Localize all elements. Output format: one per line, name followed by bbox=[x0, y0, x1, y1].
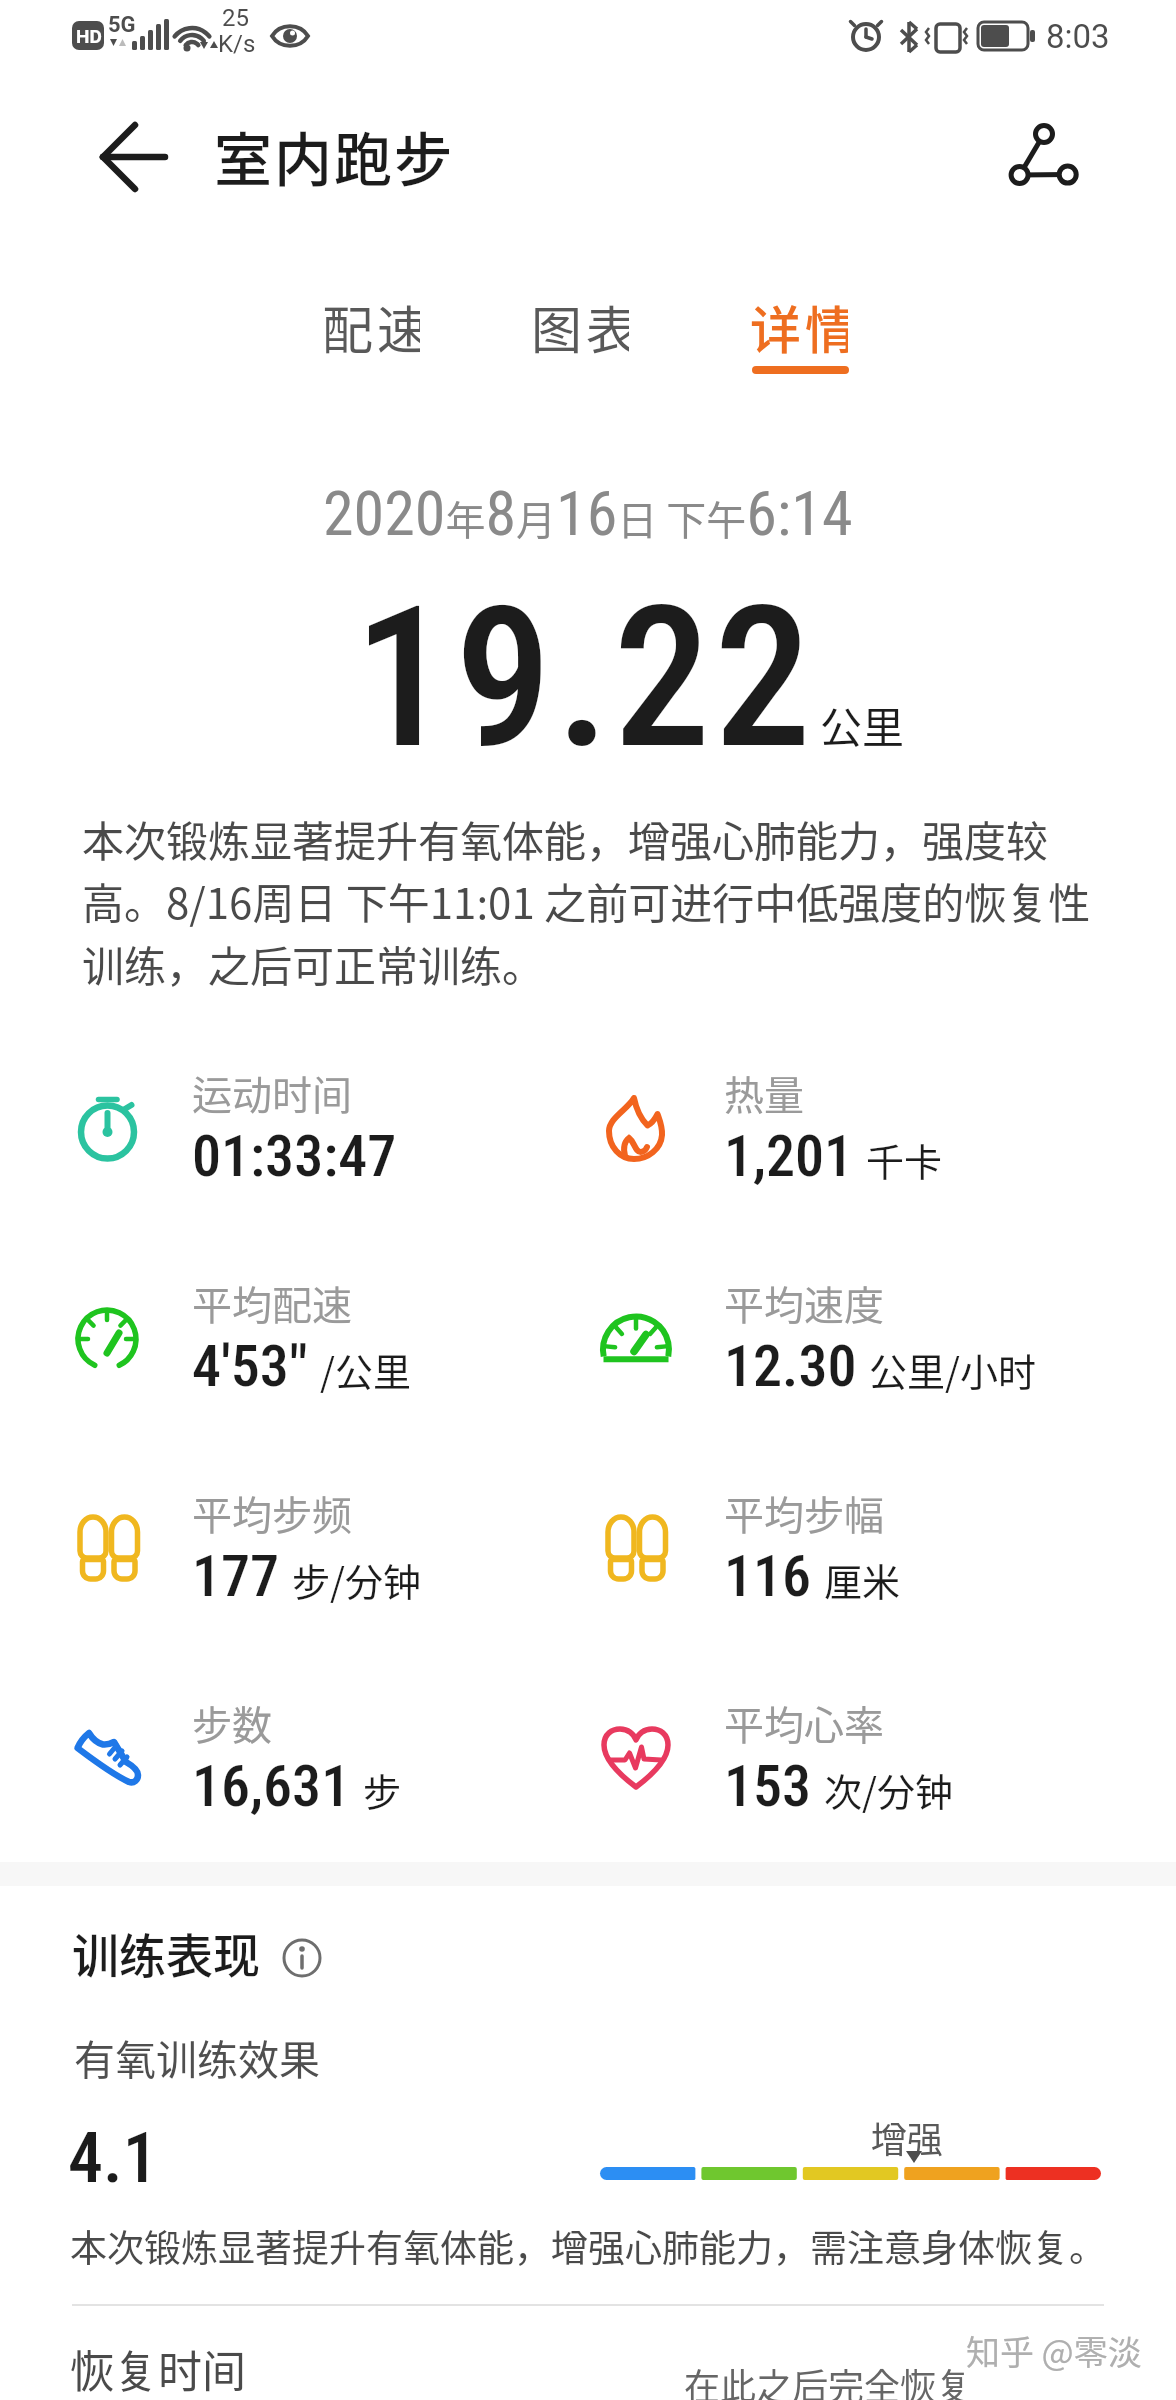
staticText: 平均心率 bbox=[724, 1694, 884, 1752]
staticText: 01:33:47 bbox=[192, 1122, 397, 1190]
staticText: 详情 bbox=[750, 290, 848, 364]
staticText: 图表 bbox=[531, 290, 629, 364]
staticText: 本次锻炼显著提升有氧体能，增强心肺能力，强度较 bbox=[82, 808, 1049, 869]
staticText: 177 bbox=[192, 1542, 280, 1610]
staticText: 25 bbox=[222, 4, 249, 32]
button[interactable]: 平均配速 bbox=[60, 1273, 570, 1443]
staticText: 4'53" bbox=[192, 1332, 308, 1400]
staticText: 平均步频 bbox=[192, 1484, 352, 1542]
staticText: 116 bbox=[724, 1542, 812, 1610]
staticText: 高。8/16周日 下午11:01 之前可进行中低强度的恢复性 bbox=[82, 870, 1091, 931]
staticText: /公里 bbox=[320, 1342, 411, 1397]
staticText: 本次锻炼显著提升有氧体能，增强心肺能力，需注意身体恢复。 bbox=[70, 2219, 1106, 2273]
staticText: 热量 bbox=[724, 1064, 804, 1122]
staticText: 配速 bbox=[322, 290, 420, 364]
staticText: 步 bbox=[363, 1762, 402, 1817]
button[interactable]: 图表 bbox=[531, 288, 629, 384]
button[interactable] bbox=[990, 110, 1090, 210]
staticText: 训练，之后可正常训练。 bbox=[82, 933, 545, 994]
staticText: 12.30 bbox=[724, 1332, 857, 1400]
button[interactable]: 平均步幅 bbox=[592, 1483, 1102, 1653]
staticText: 4.1 bbox=[68, 2117, 158, 2199]
button[interactable]: 配速 bbox=[322, 288, 420, 384]
staticText: 8:03 bbox=[1046, 17, 1110, 56]
staticText: 知乎 @零淡 bbox=[966, 2326, 1142, 2375]
staticText: 16,631 bbox=[192, 1752, 351, 1820]
staticText: 训练表现 bbox=[72, 1918, 260, 1986]
staticText: 公里 bbox=[820, 694, 905, 755]
staticText: 恢复时间 bbox=[70, 2337, 246, 2400]
button[interactable]: 平均心率 bbox=[592, 1693, 1102, 1863]
staticText: 步/分钟 bbox=[292, 1552, 421, 1607]
staticText: 步数 bbox=[192, 1694, 272, 1752]
button[interactable]: 平均步频 bbox=[60, 1483, 570, 1653]
staticText: 千卡 bbox=[866, 1132, 943, 1187]
staticText: 厘米 bbox=[824, 1552, 901, 1607]
staticText: 有氧训练效果 bbox=[74, 2027, 320, 2086]
button[interactable]: 平均速度 bbox=[592, 1273, 1102, 1443]
staticText: 公里/小时 bbox=[869, 1342, 1036, 1397]
staticText: 平均配速 bbox=[192, 1274, 352, 1332]
staticText: K/s bbox=[218, 30, 256, 58]
staticText: 平均速度 bbox=[724, 1274, 884, 1332]
staticText: 1,201 bbox=[724, 1122, 854, 1190]
button[interactable]: 步数 bbox=[60, 1693, 570, 1863]
button[interactable] bbox=[80, 110, 180, 210]
staticText: 运动时间 bbox=[192, 1064, 352, 1122]
staticText: HD bbox=[76, 25, 102, 47]
staticText: 5G bbox=[108, 12, 136, 38]
staticText: 153 bbox=[724, 1752, 812, 1820]
staticText: 2020年8月16日 下午6:14 bbox=[323, 477, 853, 550]
staticText: 室内跑步 bbox=[214, 114, 455, 198]
staticText: 在此之后完全恢复 bbox=[684, 2358, 973, 2400]
button[interactable]: 详情 bbox=[750, 288, 848, 384]
button[interactable]: 运动时间 bbox=[60, 1063, 570, 1233]
button[interactable]: 热量 bbox=[592, 1063, 1102, 1233]
staticText: 19.22 bbox=[354, 565, 815, 792]
staticText: 增强 bbox=[871, 2111, 944, 2163]
staticText: 平均步幅 bbox=[724, 1484, 884, 1542]
staticText: 次/分钟 bbox=[824, 1762, 953, 1817]
